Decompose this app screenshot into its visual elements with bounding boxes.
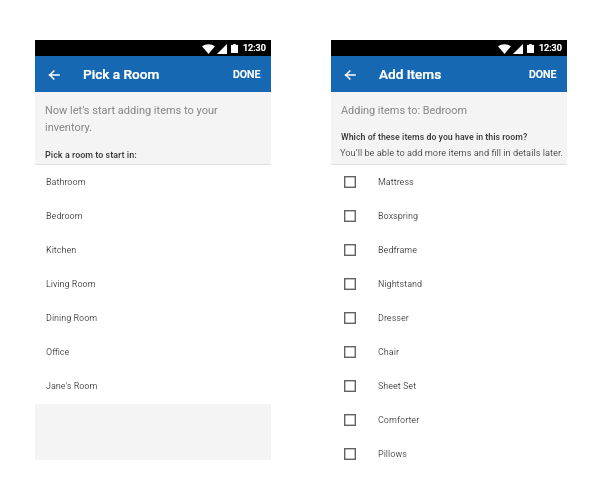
button[interactable]: Pillows: [331, 437, 567, 471]
staticText: DONE: [529, 68, 557, 80]
button[interactable]: Chair: [331, 335, 567, 369]
staticText: DONE: [233, 68, 261, 80]
button[interactable]: Dining Room: [35, 301, 271, 335]
staticText: 12:30: [539, 43, 562, 54]
staticText: Bedframe: [378, 245, 418, 256]
staticText: Adding items to: Bedroom: [341, 104, 467, 117]
button[interactable]: Back: [42, 63, 65, 86]
staticText: Dining Room: [46, 313, 98, 324]
staticText: Chair: [378, 347, 399, 358]
button[interactable]: Back: [338, 63, 361, 86]
staticText: Pick a room to start in:: [45, 150, 137, 161]
staticText: Mattress: [378, 177, 414, 188]
button[interactable]: Nightstand: [331, 267, 567, 301]
staticText: Pick a Room: [83, 66, 160, 82]
button[interactable]: Sheet Set: [331, 369, 567, 403]
button[interactable]: Comforter: [331, 403, 567, 437]
button[interactable]: Mattress: [331, 165, 567, 199]
button[interactable]: Boxspring: [331, 199, 567, 233]
button[interactable]: Kitchen: [35, 233, 271, 267]
staticText: You’ll be able to add more items and fil…: [340, 147, 563, 158]
staticText: Add Items: [379, 66, 442, 82]
button[interactable]: DONE: [223, 59, 271, 89]
button[interactable]: Bedroom: [35, 199, 271, 233]
staticText: Living Room: [46, 279, 96, 290]
staticText: Dresser: [378, 313, 409, 324]
staticText: Boxspring: [378, 211, 419, 222]
staticText: Comforter: [378, 415, 420, 426]
button[interactable]: Bedframe: [331, 233, 567, 267]
staticText: Which of these items do you have in this…: [341, 132, 528, 142]
staticText: Office: [46, 347, 70, 358]
staticText: Kitchen: [46, 245, 77, 256]
staticText: Bathroom: [46, 177, 86, 188]
button[interactable]: Bathroom: [35, 165, 271, 199]
staticText: Pillows: [378, 449, 407, 460]
button[interactable]: Jane's Room: [35, 369, 271, 403]
button[interactable]: Dresser: [331, 301, 567, 335]
button[interactable]: DONE: [519, 59, 567, 89]
staticText: Nightstand: [378, 279, 423, 290]
button[interactable]: Office: [35, 335, 271, 369]
staticText: 12:30: [243, 43, 266, 54]
staticText: Jane's Room: [46, 381, 98, 392]
staticText: Bedroom: [46, 211, 83, 222]
staticText: Sheet Set: [378, 381, 417, 392]
staticText: Now let’s start adding items to your inv…: [45, 104, 218, 134]
button[interactable]: Living Room: [35, 267, 271, 301]
